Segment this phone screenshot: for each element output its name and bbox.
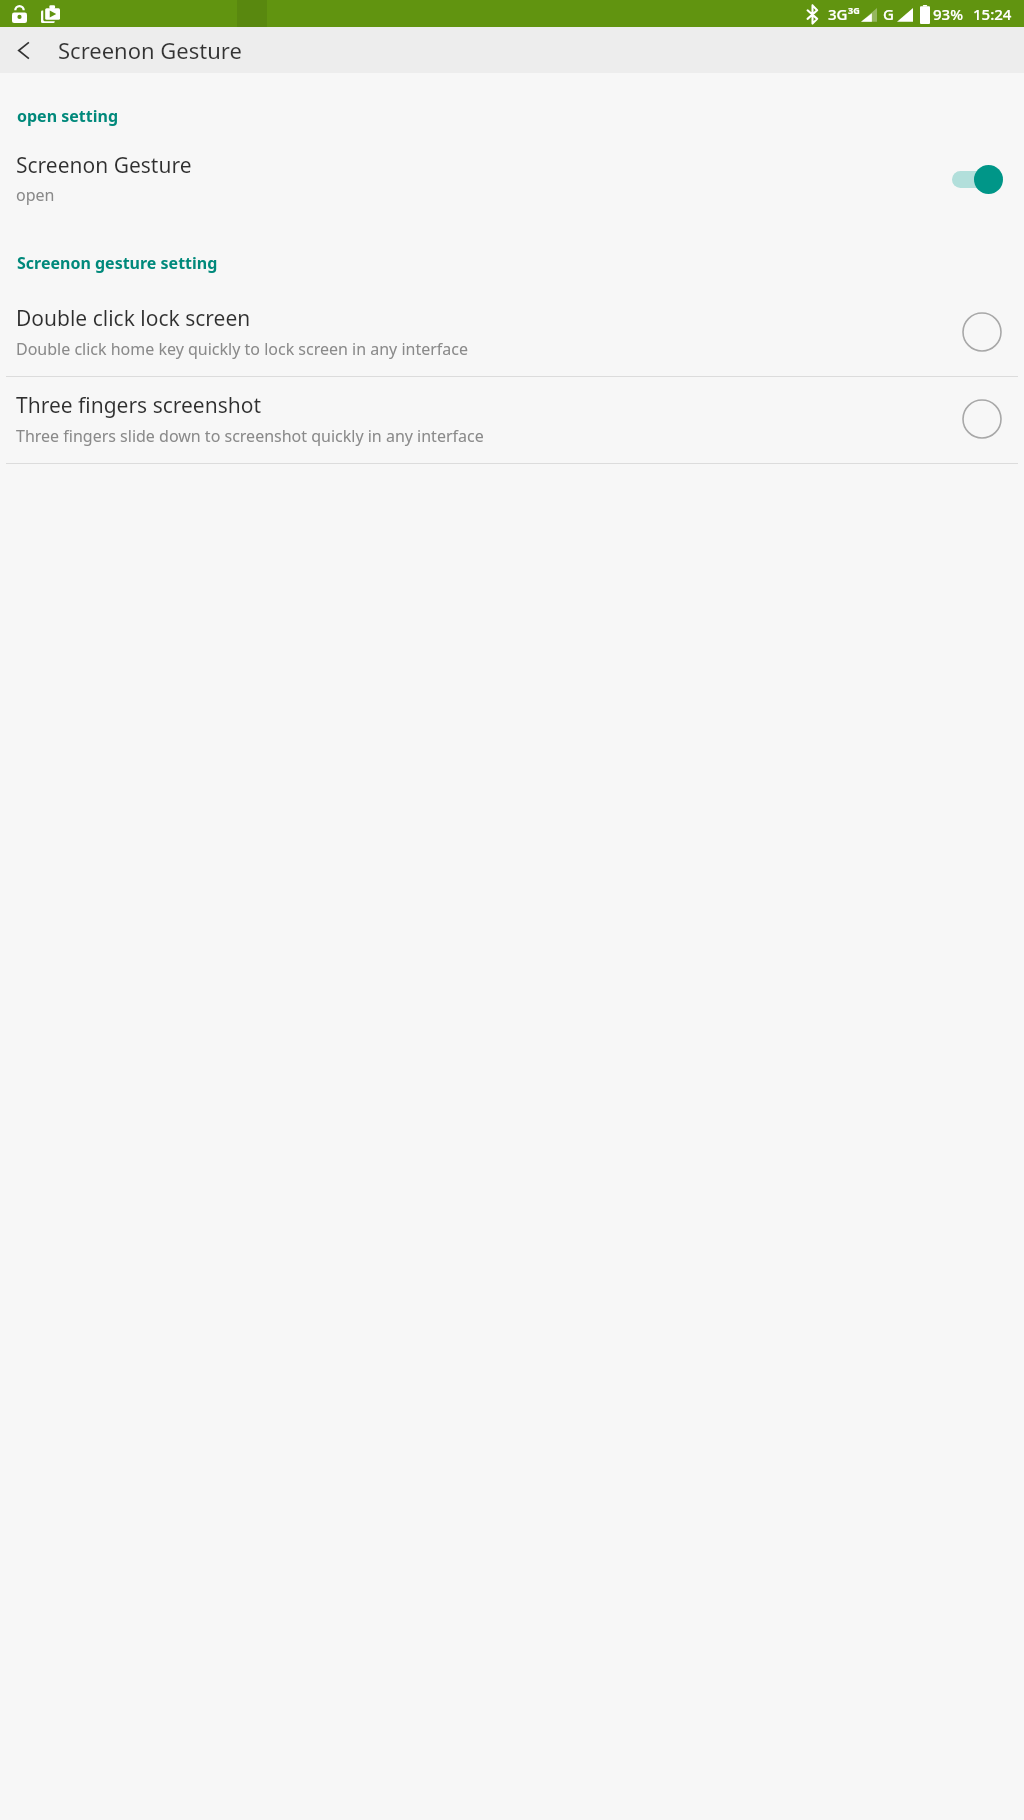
button[interactable]: Three fingers screenshot bbox=[0, 377, 1024, 463]
staticText: open setting bbox=[17, 105, 118, 127]
staticText: 15:24 bbox=[973, 4, 1012, 24]
button[interactable]: Select option bbox=[960, 310, 1004, 354]
staticText: open bbox=[16, 184, 55, 206]
staticText: 93% bbox=[933, 4, 963, 24]
button[interactable]: Double click lock screen bbox=[0, 290, 1024, 376]
button[interactable]: Screenon Gesture toggle bbox=[952, 164, 1004, 194]
button[interactable]: Screenon Gesture bbox=[0, 145, 1024, 216]
staticText: Double click home key quickly to lock sc… bbox=[16, 338, 469, 360]
staticText: Screenon Gesture bbox=[58, 35, 242, 65]
staticText: Three fingers slide down to screenshot q… bbox=[16, 425, 484, 447]
staticText: 3G bbox=[828, 4, 848, 24]
staticText: G bbox=[883, 4, 894, 24]
button[interactable]: Select option bbox=[960, 397, 1004, 441]
staticText: Screenon gesture setting bbox=[17, 252, 218, 274]
staticText: Three fingers screenshot bbox=[16, 391, 262, 420]
staticText: 3G bbox=[848, 4, 860, 16]
staticText: Screenon Gesture bbox=[16, 151, 192, 180]
button[interactable]: Back bbox=[6, 32, 42, 68]
staticText: Double click lock screen bbox=[16, 304, 251, 333]
